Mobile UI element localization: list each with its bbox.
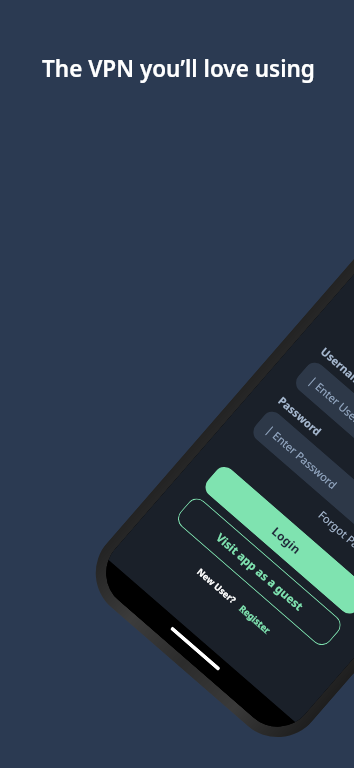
staticText: The VPN you’ll love using — [42, 53, 315, 84]
staticText: Username — [318, 344, 354, 392]
button[interactable]: Forgot Password? — [235, 437, 354, 579]
button[interactable]: Visit app as a guest — [173, 494, 345, 650]
staticText: New User? — [195, 565, 239, 606]
staticText: | Enter Username — [306, 373, 354, 445]
staticText: Login — [269, 523, 305, 557]
button[interactable]: Login — [201, 462, 354, 618]
staticText: Visit app as a guest — [213, 530, 307, 615]
staticText: Password — [275, 393, 325, 439]
button[interactable]: | Enter Password — [249, 407, 354, 563]
button[interactable]: Register — [237, 602, 274, 636]
staticText: | Enter Password — [263, 422, 341, 492]
button[interactable]: | Enter Username — [292, 358, 354, 514]
